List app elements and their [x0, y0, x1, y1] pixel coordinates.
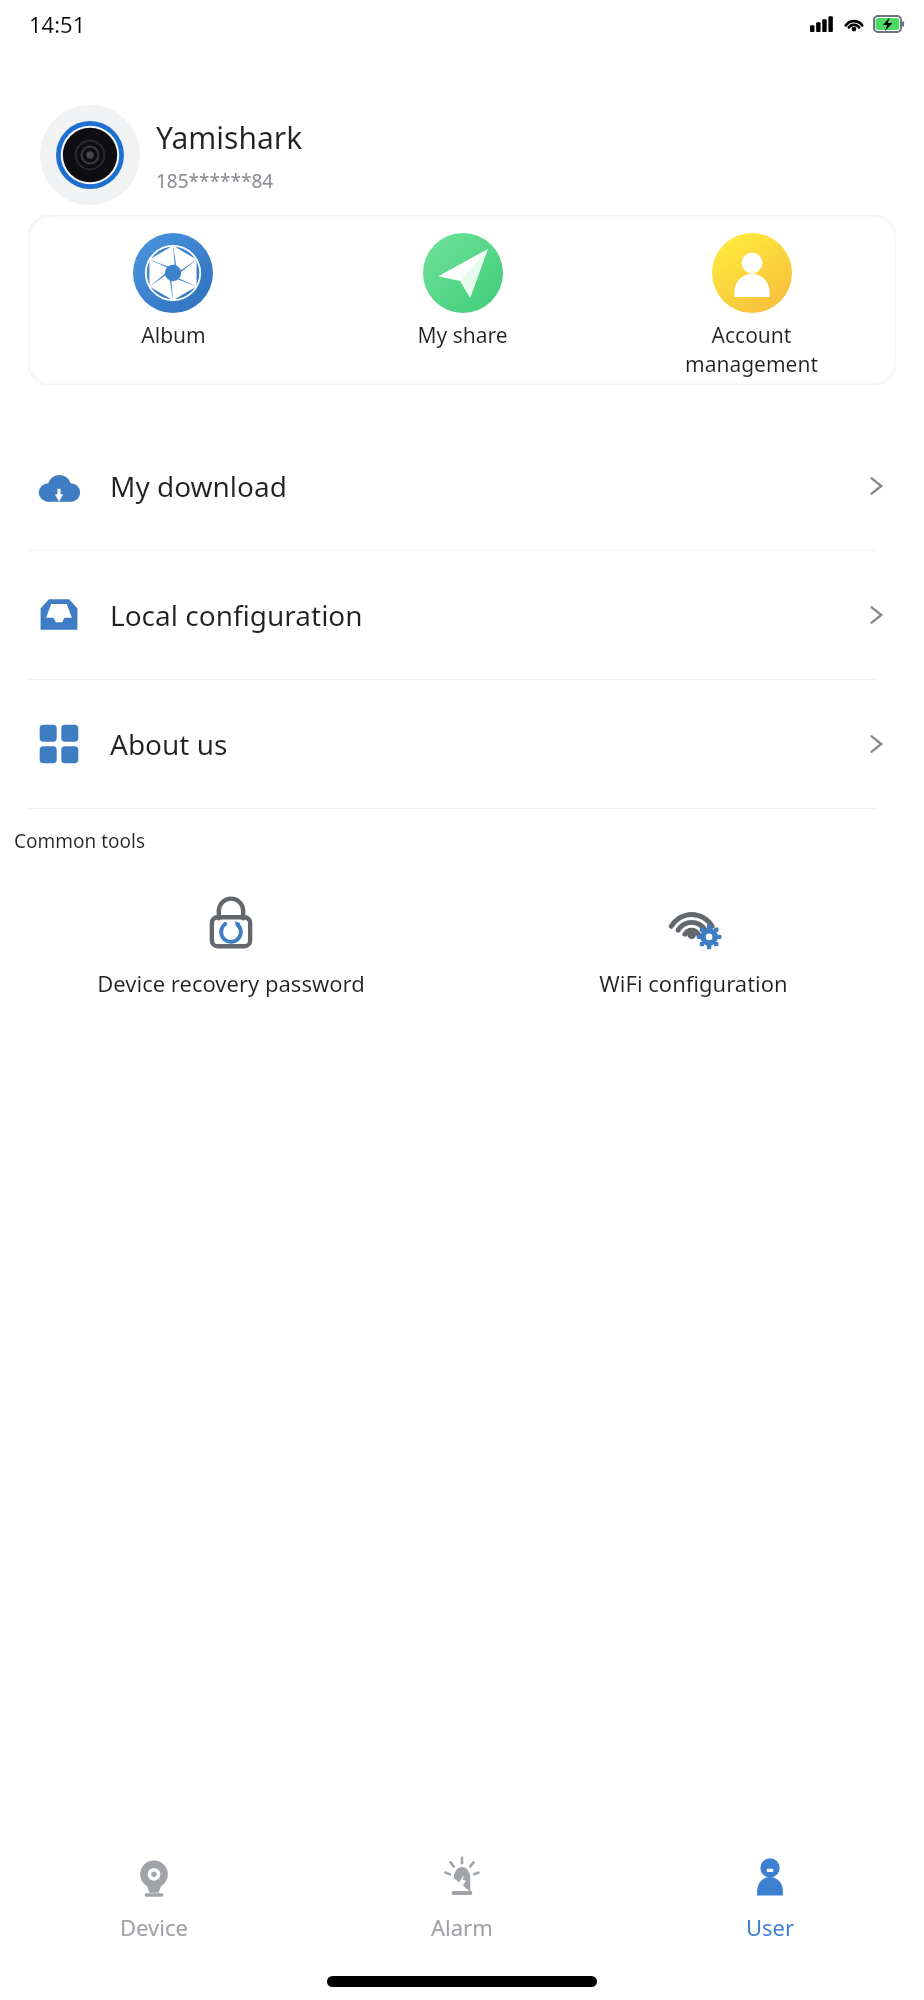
- button[interactable]: About us: [0, 680, 924, 808]
- button[interactable]: Device: [0, 1838, 308, 1958]
- button[interactable]: My share: [318, 215, 607, 385]
- staticText: About us: [110, 725, 228, 763]
- staticText: Account management: [685, 321, 818, 379]
- staticText: 14:51: [29, 9, 86, 39]
- staticText: User: [746, 1912, 795, 1942]
- staticText: WiFi configuration: [599, 968, 788, 998]
- button[interactable]: Alarm: [308, 1838, 616, 1958]
- staticText: 185******84: [156, 168, 274, 194]
- staticText: Device recovery password: [97, 968, 365, 998]
- button[interactable]: Yamishark: [0, 105, 924, 205]
- button[interactable]: Account management: [607, 215, 896, 385]
- staticText: Alarm: [431, 1912, 493, 1942]
- button[interactable]: WiFi configuration: [589, 890, 798, 1002]
- button[interactable]: Local configuration: [0, 551, 924, 679]
- staticText: Device: [120, 1912, 188, 1942]
- staticText: My download: [110, 467, 287, 505]
- button[interactable]: Device recovery password: [87, 890, 375, 1002]
- staticText: Common tools: [14, 828, 146, 854]
- staticText: Yamishark: [156, 117, 303, 158]
- button[interactable]: User: [616, 1838, 924, 1958]
- staticText: Album: [141, 321, 206, 350]
- button[interactable]: My download: [0, 422, 924, 550]
- button[interactable]: Album: [28, 215, 318, 385]
- staticText: Local configuration: [110, 596, 363, 634]
- staticText: My share: [417, 321, 508, 350]
